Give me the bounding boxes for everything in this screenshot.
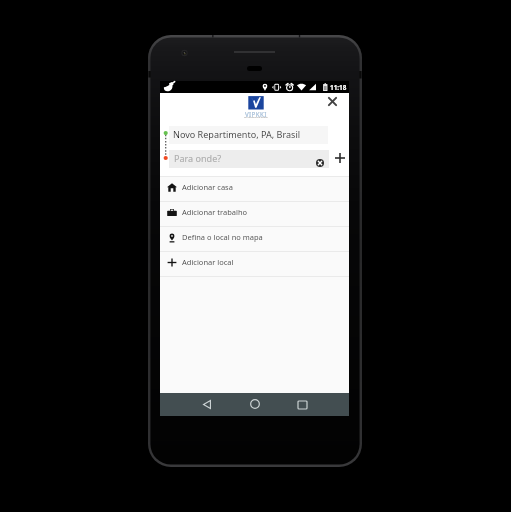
button[interactable]: Close [324,93,340,109]
button[interactable]: Defina o local no mapa [160,227,349,251]
staticText: Adicionar trabalho [182,207,248,217]
button[interactable]: Clear destination [315,158,325,168]
staticText: Defina o local no mapa [182,232,263,242]
button[interactable]: Home [244,393,266,415]
button[interactable]: Adicionar local [160,252,349,276]
staticText: VIPKKI [245,110,267,118]
staticText: 11:18 [330,83,347,92]
button[interactable]: Recent apps [291,394,313,416]
staticText: Sua consultoria de viagens [244,116,268,119]
staticText: Novo Repartimento, PA, Brasil [173,128,301,140]
button[interactable]: Back [196,393,218,415]
button[interactable]: Adicionar casa [160,177,349,201]
staticText: Para onde? [174,152,222,164]
staticText: Adicionar casa [182,182,233,192]
button[interactable]: Novo Repartimento, PA, Brasil [169,126,328,144]
button[interactable]: Para onde? [169,150,329,168]
staticText: Adicionar local [182,257,234,267]
button[interactable]: Adicionar trabalho [160,202,349,226]
button[interactable]: Add stop [332,150,348,166]
